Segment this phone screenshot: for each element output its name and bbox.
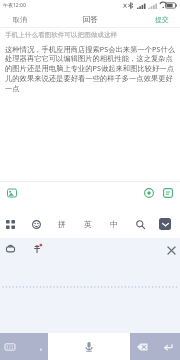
button[interactable]: Close xyxy=(165,244,177,256)
button[interactable]: Collapse keyboard xyxy=(159,218,171,230)
button[interactable]: 取消 xyxy=(10,12,30,27)
button[interactable]: More tools xyxy=(31,242,43,254)
staticText: 这种情况，手机应用商店搜索PS会出来第一个PS什么处理器再它它可以编辑图片的相机… xyxy=(5,44,176,93)
button[interactable]: 拼 xyxy=(56,218,68,230)
button[interactable]: Enter xyxy=(155,333,180,360)
button[interactable]: Tools xyxy=(4,218,16,230)
staticText: 提交 xyxy=(155,15,169,24)
button[interactable]: Backspace xyxy=(130,333,155,360)
staticText: 取消 xyxy=(13,15,27,24)
other: Voice input xyxy=(85,342,93,352)
button[interactable]: Emoji xyxy=(30,218,42,230)
button[interactable]: 中 xyxy=(108,218,120,230)
staticText: , xyxy=(40,341,43,352)
staticText: 英 xyxy=(84,219,92,229)
button[interactable]: , xyxy=(0,333,48,360)
button[interactable]: Add image xyxy=(4,185,20,201)
staticText: 手机上什么看图软件可以把图做成这样 xyxy=(5,31,118,39)
staticText: 中 xyxy=(110,219,118,229)
button[interactable]: Voice input xyxy=(48,333,130,360)
button[interactable]: Clipboard xyxy=(4,242,16,254)
button[interactable]: Draft xyxy=(160,185,176,201)
button[interactable]: 提交 xyxy=(152,12,172,27)
staticText: 拼 xyxy=(58,219,66,229)
button[interactable]: Search xyxy=(134,218,146,230)
button[interactable]: 英 xyxy=(82,218,94,230)
staticText: 午夜12:00 xyxy=(3,2,26,9)
button[interactable]: Preview xyxy=(141,185,157,201)
staticText: 回答 xyxy=(83,15,98,24)
